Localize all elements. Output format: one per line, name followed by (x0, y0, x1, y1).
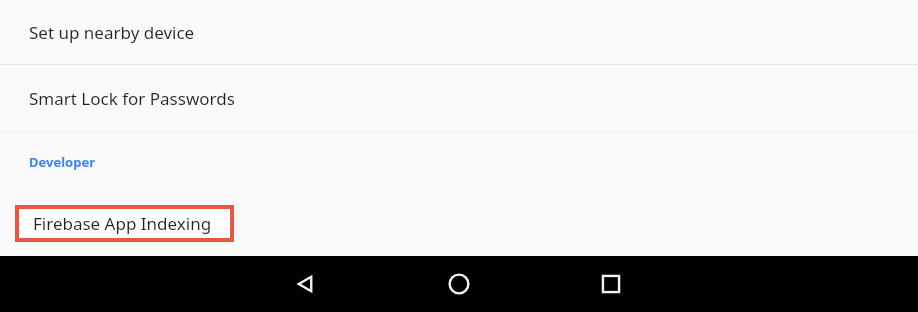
button[interactable]: Back (277, 266, 333, 302)
staticText: Firebase App Indexing (33, 212, 212, 235)
button[interactable]: Home (431, 266, 487, 302)
button[interactable]: Set up nearby device (0, 0, 918, 64)
button[interactable]: Smart Lock for Passwords (0, 65, 918, 131)
staticText: Set up nearby device (29, 21, 195, 44)
button[interactable]: Recent apps (583, 266, 639, 302)
staticText: Developer (29, 153, 95, 171)
button[interactable]: Firebase App Indexing (15, 205, 234, 242)
staticText: Smart Lock for Passwords (29, 87, 235, 110)
